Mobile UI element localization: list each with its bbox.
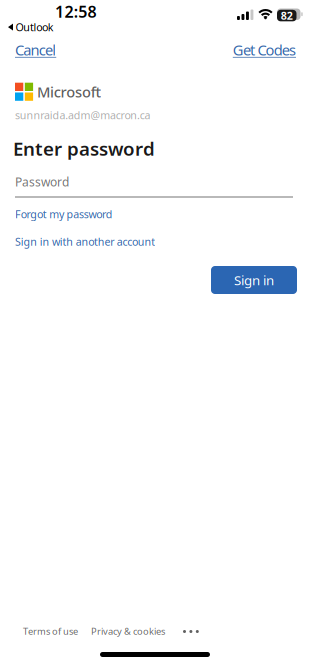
staticText: Microsoft (37, 82, 101, 101)
staticText: Sign in (234, 271, 274, 289)
staticText: 12:58 (55, 1, 97, 22)
staticText: Cancel (15, 40, 56, 59)
staticText: Enter password (13, 136, 155, 161)
staticText: Password (15, 174, 69, 190)
staticText: 82 (281, 8, 293, 23)
staticText: Terms of use (23, 625, 78, 637)
staticText: sunnraida.adm@macron.ca (15, 108, 151, 122)
staticText: Sign in with another account (15, 234, 155, 249)
staticText: Get Codes (233, 40, 296, 59)
staticText: Forgot my password (15, 207, 113, 221)
staticText: Outlook (15, 20, 54, 34)
staticText: Privacy & cookies (91, 625, 165, 637)
